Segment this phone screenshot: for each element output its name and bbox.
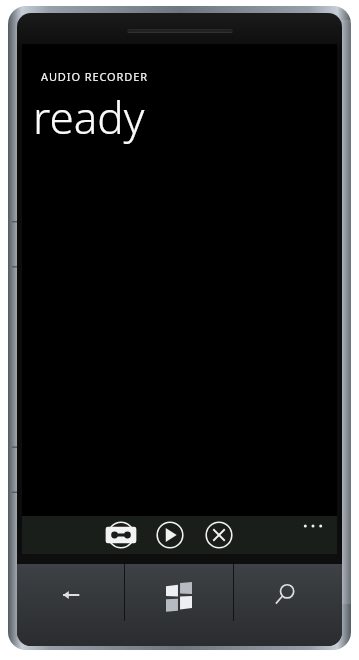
button[interactable]: Record: [107, 521, 135, 549]
button[interactable]: Play: [156, 521, 184, 549]
button[interactable]: More options: [298, 516, 328, 536]
button[interactable]: Delete: [205, 521, 233, 549]
staticText: AUDIO RECORDER: [41, 69, 148, 84]
button[interactable]: Start: [125, 564, 233, 646]
button[interactable]: Back: [17, 564, 124, 646]
staticText: ready: [33, 87, 145, 147]
button[interactable]: Search: [234, 564, 342, 646]
